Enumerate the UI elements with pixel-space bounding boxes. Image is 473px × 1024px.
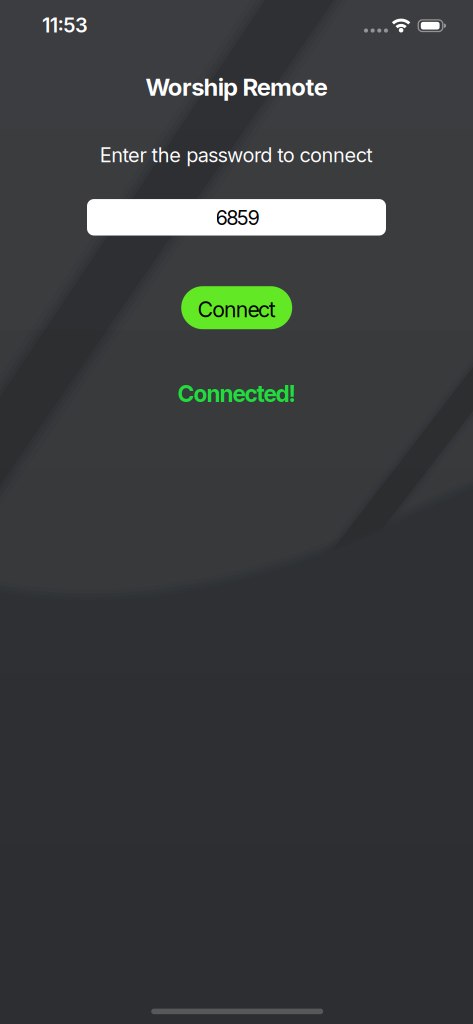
staticText: Enter the password to connect bbox=[100, 143, 373, 167]
staticText: Connect bbox=[198, 297, 276, 322]
staticText: Worship Remote bbox=[145, 73, 328, 101]
staticText: Connected! bbox=[177, 380, 295, 407]
staticText: 11:53 bbox=[42, 13, 88, 37]
staticText: 6859 bbox=[216, 206, 259, 230]
